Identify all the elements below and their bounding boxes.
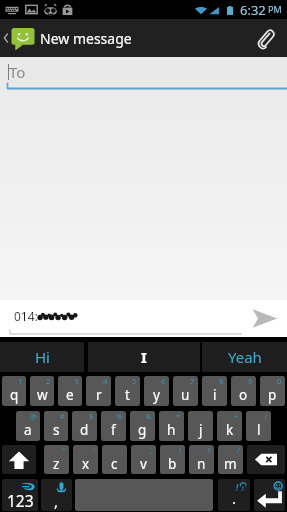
staticText: f (111, 421, 116, 439)
button[interactable]: Enter (254, 479, 285, 511)
button[interactable]: " (44, 445, 69, 474)
button[interactable]: 1 (2, 376, 26, 406)
staticText: b (168, 455, 177, 473)
button[interactable]: To (0, 57, 287, 90)
staticText: 1 (18, 376, 23, 386)
button[interactable]: $ (72, 411, 97, 441)
staticText: h (167, 421, 176, 439)
staticText: 2 (46, 376, 51, 386)
staticText: : (121, 445, 124, 455)
staticText: 0 (277, 376, 282, 386)
staticText: j (199, 421, 203, 439)
button[interactable]: 5 (115, 376, 140, 406)
staticText: ' (93, 445, 95, 455)
staticText: % (116, 411, 123, 421)
button[interactable]: 4 (86, 376, 111, 406)
button[interactable]: Hi (0, 342, 84, 372)
staticText: New message (40, 29, 132, 48)
staticText: 3 (74, 376, 79, 386)
button[interactable]: 2 (30, 376, 54, 406)
staticText: 014: (14, 308, 38, 324)
staticText: 6 (161, 376, 166, 386)
button[interactable]: % (101, 411, 126, 441)
staticText: g (138, 421, 147, 439)
staticText: l (257, 421, 261, 439)
staticText: + (234, 411, 239, 421)
button[interactable]: 8 (202, 376, 227, 406)
staticText: m (224, 455, 237, 473)
button[interactable]: ! (160, 445, 185, 474)
button[interactable]: 3 (58, 376, 82, 406)
staticText: . (232, 488, 237, 508)
button[interactable]: + (217, 411, 242, 441)
button[interactable]: I (88, 342, 200, 372)
staticText: t (125, 386, 130, 404)
staticText: To (9, 62, 26, 82)
staticText: $ (89, 411, 94, 421)
button[interactable]: 123 (2, 479, 38, 511)
staticText: 4 (103, 376, 108, 386)
button[interactable]: * (159, 411, 184, 441)
staticText: d (80, 421, 89, 439)
button[interactable]: 7 (173, 376, 198, 406)
button[interactable]: # (44, 411, 68, 441)
staticText: I (141, 347, 147, 367)
staticText: y (153, 386, 160, 404)
staticText: - (207, 411, 210, 421)
staticText: p (268, 386, 277, 404)
staticText: # (60, 411, 65, 421)
button[interactable]: 9 (231, 376, 256, 406)
staticText: 8 (219, 376, 224, 386)
staticText: w (37, 386, 48, 404)
staticText: n (197, 455, 206, 473)
staticText: , (54, 491, 59, 511)
staticText: s (53, 421, 60, 439)
button[interactable]: : (102, 445, 127, 474)
staticText: e (66, 386, 74, 404)
button[interactable]: ' (73, 445, 98, 474)
button[interactable]: Yeah (202, 342, 287, 372)
staticText: i (213, 386, 217, 404)
staticText: ! (179, 445, 182, 455)
button[interactable]: @ (16, 411, 40, 441)
button[interactable]: ( (246, 411, 271, 441)
staticText: v (140, 455, 147, 473)
button[interactable]: . (218, 479, 250, 511)
button[interactable]: Shift (2, 445, 36, 474)
staticText: c (111, 455, 118, 473)
button[interactable]: New message (0, 19, 138, 57)
staticText: u (181, 386, 190, 404)
staticText: ; (150, 445, 153, 455)
staticText: Yeah (228, 347, 262, 367)
staticText: * (176, 411, 181, 421)
button[interactable]: ? (189, 445, 214, 474)
staticText: r (96, 386, 102, 404)
staticText: ( (265, 411, 268, 421)
staticText: q (10, 386, 19, 404)
button[interactable]: Backspace (247, 445, 285, 474)
staticText: Hi (35, 347, 50, 367)
staticText: 6:32 (240, 1, 266, 19)
button[interactable]: Attach (243, 19, 287, 57)
button[interactable]: - (188, 411, 213, 441)
button[interactable]: Send (242, 300, 287, 337)
staticText: PM (268, 3, 282, 15)
staticText: ? (207, 445, 211, 455)
button[interactable]: ; (131, 445, 156, 474)
staticText: & (146, 411, 152, 421)
button[interactable]: 6 (144, 376, 169, 406)
staticText: @ (30, 411, 37, 421)
button[interactable]: & (130, 411, 155, 441)
staticText: 123 (7, 490, 34, 511)
staticText: k (226, 421, 234, 439)
button[interactable]: / (218, 445, 243, 474)
button[interactable]: , (41, 479, 72, 511)
staticText: o (239, 386, 248, 404)
staticText: 7 (190, 376, 195, 386)
staticText: 5 (132, 376, 137, 386)
staticText: a (24, 421, 32, 439)
button[interactable]: 0 (260, 376, 285, 406)
staticText: z (53, 455, 60, 473)
staticText: x (82, 455, 90, 473)
